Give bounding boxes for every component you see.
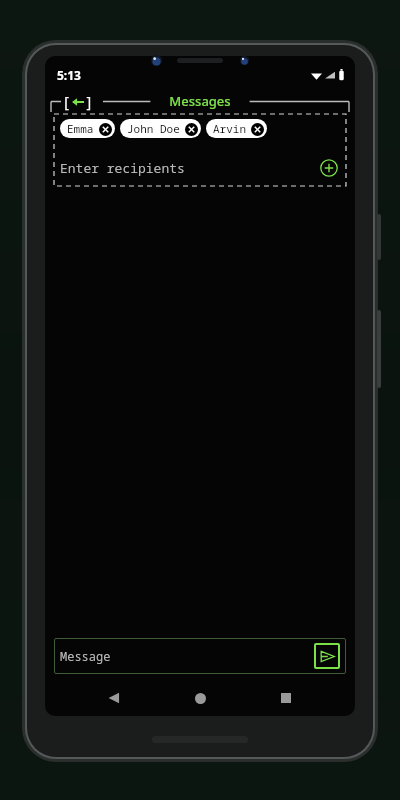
button[interactable]: Remove Arvin [250, 122, 264, 136]
button[interactable]: Remove Emma [98, 122, 112, 136]
staticText: 5:13 [57, 67, 81, 83]
staticText: ] [85, 92, 94, 111]
button[interactable]: Remove John Doe [184, 122, 198, 136]
button[interactable]: Enter recipients [60, 159, 318, 177]
staticText: Messages [169, 92, 231, 110]
staticText: [ [62, 92, 71, 111]
staticText: Emma [67, 121, 94, 136]
button[interactable]: Emma [60, 119, 115, 138]
button[interactable]: John Doe [120, 119, 201, 138]
button[interactable]: Send [314, 643, 340, 669]
button[interactable]: Home [183, 681, 217, 715]
staticText: Arvin [213, 121, 246, 136]
button[interactable]: Back [97, 681, 131, 715]
button[interactable]: Arvin [206, 119, 267, 138]
button[interactable]: Message [60, 648, 314, 664]
staticText: John Doe [127, 121, 180, 136]
button[interactable]: Back [59, 91, 97, 112]
button[interactable]: Add recipient [318, 157, 340, 179]
button[interactable]: Recents [269, 681, 303, 715]
